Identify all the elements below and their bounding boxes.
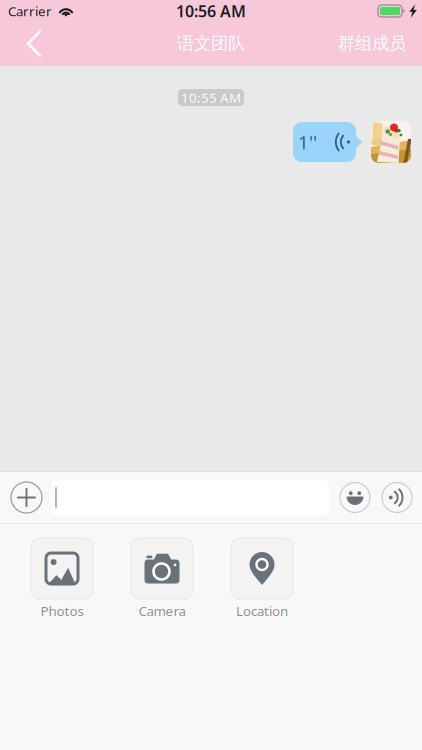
staticText: 10:56 AM [176,0,246,22]
staticText: Photos [40,602,83,620]
staticText: Carrier [8,2,52,20]
button[interactable]: Photos [12,538,112,620]
staticText: 语文团队 [177,33,245,54]
staticText: 1'' [298,130,317,154]
button[interactable]: Emoji [338,480,372,514]
button[interactable]: Voice message, 1 second [293,122,363,162]
staticText: 群组成员 [338,33,406,54]
button[interactable]: 群组成员 [330,22,414,65]
staticText: Camera [138,602,185,620]
button[interactable]: Back [12,22,56,65]
button[interactable]: Location [212,538,312,620]
button[interactable]: Voice input [380,480,414,514]
button[interactable]: Camera [112,538,212,620]
staticText: Location [236,602,288,620]
staticText: 10:55 AM [181,89,241,106]
button[interactable]: More options [8,477,45,518]
button[interactable]: Message field [51,480,329,515]
